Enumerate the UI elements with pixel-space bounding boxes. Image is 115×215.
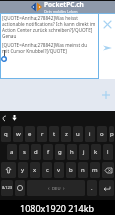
button[interactable]: k xyxy=(91,144,101,160)
button[interactable]: j xyxy=(79,144,89,160)
staticText: t xyxy=(53,130,56,138)
button[interactable]: p xyxy=(109,126,114,142)
button[interactable]: b xyxy=(66,162,76,178)
staticText: y xyxy=(21,166,25,174)
button[interactable]: y xyxy=(18,162,28,178)
button[interactable]: i xyxy=(85,126,95,142)
button[interactable]: o xyxy=(97,126,107,142)
staticText: o xyxy=(100,130,104,138)
button[interactable]: h xyxy=(67,144,77,160)
staticText: q xyxy=(4,130,8,138)
staticText: s xyxy=(23,148,26,156)
staticText: z xyxy=(65,130,68,138)
staticText: › xyxy=(63,185,65,192)
staticText: u xyxy=(76,130,80,138)
staticText: . xyxy=(91,184,93,192)
staticText: n xyxy=(81,166,85,174)
staticText: actionable notifications? Ich kann direk… xyxy=(2,21,96,27)
staticText: 1080x1920 214kb xyxy=(20,202,95,214)
button[interactable]: a xyxy=(7,144,17,160)
button[interactable]: f xyxy=(43,144,53,160)
staticText: b xyxy=(69,166,73,174)
staticText: p xyxy=(110,130,114,138)
button[interactable]: Einfügen xyxy=(10,112,18,124)
button[interactable]: v xyxy=(54,162,64,178)
button[interactable]: . xyxy=(87,180,97,196)
button[interactable]: Eingabetaste xyxy=(99,180,114,196)
staticText: [QUOTE=Anriha;278842]Was meinst du xyxy=(2,42,88,48)
button[interactable]: Senden xyxy=(99,41,115,55)
staticText: h xyxy=(70,148,74,156)
staticText: PocketPC.ch xyxy=(44,0,84,9)
button[interactable]: q xyxy=(1,126,11,142)
staticText: j xyxy=(83,148,85,156)
button[interactable]: Leertaste xyxy=(27,180,85,196)
button[interactable]: Emoji xyxy=(15,180,25,196)
staticText: Dein mobiles Leben xyxy=(44,9,78,13)
staticText: mit Cursor Knubbel?[/QUOTE] xyxy=(2,48,67,54)
staticText: &123 xyxy=(2,185,13,191)
button[interactable]: r xyxy=(37,126,47,142)
staticText: v xyxy=(57,166,61,174)
button[interactable]: t xyxy=(49,126,59,142)
button[interactable]: d xyxy=(31,144,41,160)
staticText: c xyxy=(46,166,49,174)
staticText: f xyxy=(47,148,50,156)
button[interactable]: Löschen xyxy=(102,162,114,178)
button[interactable]: Anhang hinzufügen xyxy=(99,88,113,102)
button[interactable]: e xyxy=(25,126,35,142)
button[interactable]: &123 xyxy=(1,180,13,196)
staticText: d xyxy=(34,148,38,156)
button[interactable]: s xyxy=(19,144,29,160)
staticText: m xyxy=(92,166,98,174)
button[interactable]: w xyxy=(13,126,23,142)
button[interactable]: l xyxy=(103,144,113,160)
staticText: a xyxy=(10,148,14,156)
button[interactable]: g xyxy=(55,144,65,160)
staticText: DEU xyxy=(52,186,61,192)
staticText: i xyxy=(89,130,91,138)
staticText: x xyxy=(33,166,37,174)
button[interactable]: x xyxy=(30,162,40,178)
staticText: r xyxy=(41,130,44,138)
button[interactable]: Abbrechen xyxy=(99,17,115,31)
button[interactable]: n xyxy=(78,162,88,178)
button[interactable]: Umschalttaste xyxy=(1,162,16,178)
button[interactable]: Rückgängig xyxy=(0,112,7,124)
staticText: w xyxy=(16,130,21,138)
staticText: [QUOTE=Anriha;278842]Was heisst xyxy=(2,15,79,21)
staticText: l xyxy=(107,148,109,156)
staticText: e xyxy=(28,130,32,138)
button[interactable]: c xyxy=(42,162,52,178)
staticText: Action Center zurück schreiben?[/QUOTE] xyxy=(2,27,93,33)
staticText: g xyxy=(58,148,62,156)
staticText: Genau xyxy=(2,33,17,39)
button[interactable]: z xyxy=(61,126,71,142)
staticText: ‹ xyxy=(48,185,50,192)
staticText: k xyxy=(94,148,98,156)
button[interactable]: u xyxy=(73,126,83,142)
button[interactable]: m xyxy=(90,162,100,178)
